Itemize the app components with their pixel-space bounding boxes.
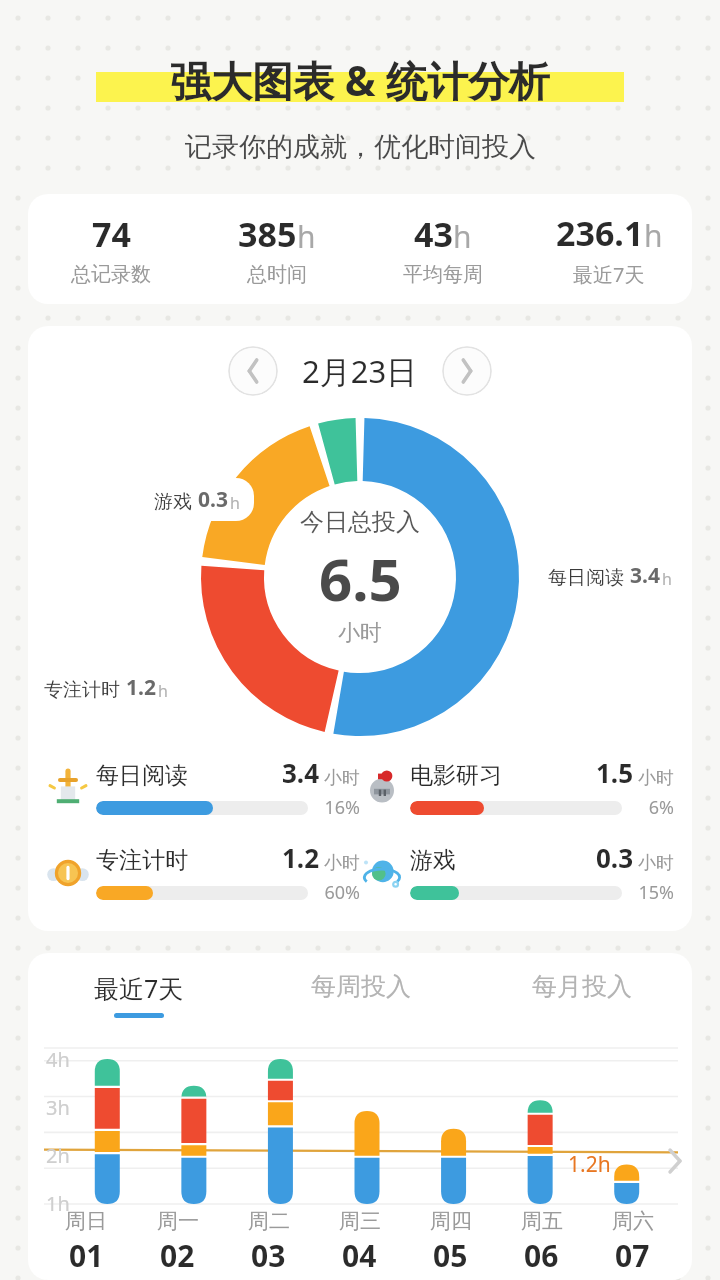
button[interactable]: 专注计时	[46, 840, 360, 905]
staticText: 60%	[316, 880, 360, 905]
staticText: 每日阅读	[548, 566, 624, 590]
staticText: 385	[238, 211, 297, 257]
staticText: 小时	[324, 852, 360, 875]
staticText: 1.2	[126, 673, 156, 702]
staticText: 6%	[630, 795, 674, 820]
staticText: 04	[342, 1235, 377, 1276]
button[interactable]: 专注计时	[30, 666, 182, 709]
staticText: 每日阅读	[96, 761, 188, 790]
staticText: 0.3	[596, 840, 634, 875]
staticText: 最近7天	[94, 971, 184, 1005]
staticText: 周六	[612, 1208, 654, 1234]
staticText: 小时	[638, 852, 674, 875]
staticText: 06	[524, 1235, 559, 1276]
button[interactable]: 游戏	[140, 478, 254, 521]
button[interactable]: 电影研习	[360, 755, 674, 820]
staticText: 07	[615, 1235, 650, 1276]
staticText: h	[230, 492, 240, 514]
staticText: 周二	[248, 1208, 290, 1234]
staticText: 总时间	[247, 262, 307, 287]
staticText: 3.4	[630, 561, 660, 590]
staticText: 01	[69, 1235, 104, 1276]
staticText: 强大图表 & 统计分析	[170, 52, 551, 108]
staticText: 3h	[46, 1094, 70, 1121]
staticText: 小时	[638, 767, 674, 790]
staticText: 1.2	[282, 840, 320, 875]
staticText: 每周投入	[311, 971, 411, 1002]
staticText: h	[158, 680, 168, 702]
staticText: 今日总投入	[300, 507, 420, 537]
staticText: 电影研习	[410, 761, 502, 790]
staticText: 周三	[339, 1208, 381, 1234]
button[interactable]: 每周投入	[250, 971, 471, 1015]
staticText: 03	[251, 1235, 286, 1276]
staticText: 4h	[46, 1046, 70, 1073]
button[interactable]: 游戏	[360, 840, 674, 905]
button[interactable]: 74	[28, 211, 194, 287]
staticText: 游戏	[154, 490, 192, 514]
button[interactable]: 43	[360, 211, 526, 287]
staticText: 记录你的成就，优化时间投入	[185, 130, 536, 164]
staticText: 周四	[430, 1208, 472, 1234]
button[interactable]: 每月投入	[471, 971, 692, 1015]
staticText: 43	[414, 211, 453, 257]
staticText: 2月23日	[302, 350, 418, 392]
staticText: 3.4	[282, 755, 320, 790]
staticText: 1.5	[596, 755, 634, 790]
staticText: 05	[433, 1235, 468, 1276]
button[interactable]: Next page	[660, 1146, 690, 1176]
staticText: 16%	[316, 795, 360, 820]
button[interactable]: Previous day	[228, 346, 278, 396]
staticText: h	[662, 568, 672, 590]
staticText: h	[453, 216, 472, 257]
staticText: 周五	[521, 1208, 563, 1234]
staticText: 小时	[338, 619, 382, 647]
staticText: 周一	[157, 1208, 199, 1234]
staticText: 小时	[324, 767, 360, 790]
staticText: 02	[160, 1235, 195, 1276]
button[interactable]: 236.1	[526, 210, 692, 288]
staticText: 平均每周	[403, 262, 483, 287]
button[interactable]: 每日阅读	[46, 755, 360, 820]
staticText: 1.2h	[568, 1150, 611, 1179]
staticText: 游戏	[410, 846, 456, 875]
staticText: 每月投入	[532, 971, 632, 1002]
staticText: 最近7天	[573, 261, 645, 288]
staticText: 15%	[630, 880, 674, 905]
staticText: 236.1	[556, 210, 644, 256]
staticText: 2h	[46, 1142, 70, 1169]
button[interactable]: 385	[194, 211, 360, 287]
button[interactable]: 最近7天	[28, 971, 250, 1018]
staticText: 74	[92, 211, 131, 257]
staticText: 6.5	[319, 539, 402, 618]
staticText: h	[644, 215, 663, 256]
staticText: h	[297, 216, 316, 257]
staticText: 专注计时	[44, 678, 120, 702]
staticText: 周日	[65, 1208, 107, 1234]
staticText: 专注计时	[96, 846, 188, 875]
button[interactable]: 每日阅读	[534, 554, 686, 597]
button[interactable]: Next day	[442, 346, 492, 396]
staticText: 0.3	[198, 485, 228, 514]
staticText: 总记录数	[71, 262, 151, 287]
staticText: 1h	[46, 1190, 70, 1217]
